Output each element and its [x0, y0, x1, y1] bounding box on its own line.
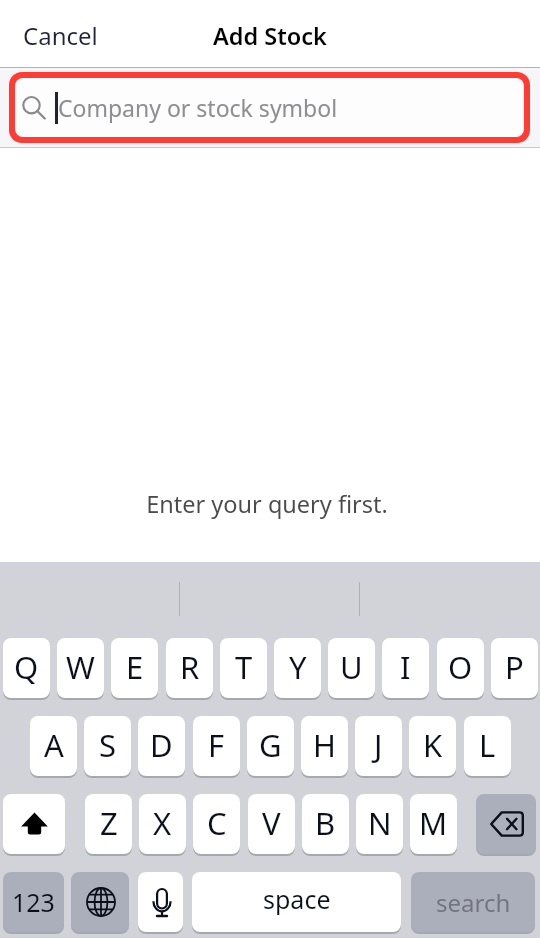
button[interactable]: Z	[85, 794, 132, 854]
button[interactable]: T	[220, 638, 267, 698]
staticText: T	[235, 646, 253, 688]
staticText: K	[423, 724, 443, 766]
staticText: Z	[100, 802, 118, 844]
staticText: S	[99, 724, 117, 766]
button[interactable]: M	[410, 794, 457, 854]
staticText: V	[262, 802, 281, 844]
staticText: search	[436, 886, 511, 919]
staticText: I	[400, 646, 411, 688]
button[interactable]: Y	[274, 638, 321, 698]
button[interactable]: O	[437, 638, 484, 698]
button[interactable]: Shift	[3, 794, 65, 854]
staticText: C	[207, 802, 227, 844]
staticText: M	[419, 802, 448, 844]
staticText: space	[263, 882, 331, 916]
staticText: W	[66, 646, 95, 688]
staticText: U	[340, 646, 363, 688]
button[interactable]: space	[192, 872, 401, 932]
staticText: O	[448, 646, 473, 688]
staticText: B	[315, 802, 336, 844]
button[interactable]: 123	[3, 872, 64, 932]
staticText: X	[153, 802, 172, 844]
button[interactable]: A	[30, 716, 77, 776]
button[interactable]: C	[193, 794, 240, 854]
button[interactable]: K	[409, 716, 456, 776]
button[interactable]: J	[355, 716, 402, 776]
button[interactable]: F	[193, 716, 240, 776]
button[interactable]: G	[247, 716, 294, 776]
staticText: F	[208, 724, 225, 766]
staticText: G	[259, 724, 282, 766]
button[interactable]: S	[84, 716, 131, 776]
button[interactable]: Cancel	[13, 13, 108, 58]
staticText: H	[313, 724, 336, 766]
button[interactable]: P	[491, 638, 538, 698]
button[interactable]: U	[328, 638, 375, 698]
staticText: Enter your query first.	[146, 488, 388, 520]
button[interactable]: W	[57, 638, 104, 698]
staticText: 123	[12, 885, 55, 919]
button[interactable]: R	[166, 638, 213, 698]
button[interactable]: B	[302, 794, 349, 854]
button[interactable]: Company or stock symbol	[15, 78, 524, 137]
staticText: E	[126, 646, 144, 688]
button[interactable]: L	[464, 716, 511, 776]
staticText: D	[150, 724, 173, 766]
staticText: Add Stock	[213, 20, 327, 52]
button[interactable]: E	[111, 638, 158, 698]
button[interactable]: Next keyboard	[71, 872, 129, 932]
button[interactable]: Q	[3, 638, 50, 698]
button[interactable]: search	[411, 872, 535, 932]
button[interactable]: N	[356, 794, 403, 854]
staticText: Q	[14, 646, 39, 688]
button[interactable]: I	[382, 638, 429, 698]
button[interactable]: D	[138, 716, 185, 776]
staticText: A	[44, 724, 64, 766]
button[interactable]: V	[248, 794, 295, 854]
button[interactable]: X	[139, 794, 186, 854]
button[interactable]: Backspace	[476, 794, 536, 854]
staticText: P	[505, 646, 524, 688]
staticText: Y	[289, 646, 307, 688]
staticText: L	[479, 724, 496, 766]
staticText: N	[368, 802, 392, 844]
button[interactable]: Dictate	[138, 872, 183, 932]
staticText: R	[180, 646, 200, 688]
button[interactable]: H	[301, 716, 348, 776]
staticText: J	[374, 724, 383, 766]
staticText: Cancel	[23, 19, 98, 52]
staticText: Company or stock symbol	[58, 92, 338, 123]
